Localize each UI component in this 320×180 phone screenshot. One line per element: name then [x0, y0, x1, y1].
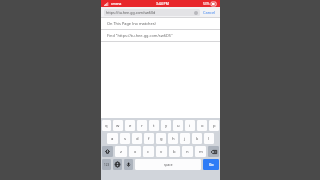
button[interactable]: l — [204, 133, 214, 144]
button[interactable]: w — [113, 120, 123, 131]
button[interactable]: s — [120, 133, 130, 144]
staticText: n — [186, 149, 189, 155]
button[interactable]: y — [161, 120, 171, 131]
staticText: s — [124, 136, 127, 142]
button[interactable]: q — [102, 120, 111, 131]
staticText: o — [201, 123, 204, 129]
staticText: t — [153, 123, 155, 129]
staticText: 53% — [203, 2, 210, 6]
staticText: b — [173, 149, 176, 155]
button[interactable]: b — [169, 146, 180, 157]
staticText: Find "https://tu.hee-gg.com/sw6DS" — [107, 33, 173, 38]
button[interactable]: f — [144, 133, 154, 144]
button[interactable]: a — [107, 133, 118, 144]
button[interactable]: c — [143, 146, 154, 157]
button[interactable]: i — [185, 120, 195, 131]
button[interactable]: j — [180, 133, 190, 144]
button[interactable]: 123 — [102, 159, 111, 170]
staticText: g — [160, 136, 163, 142]
staticText: i — [189, 123, 191, 129]
staticText: v — [160, 149, 163, 155]
button[interactable]: Cancel — [202, 9, 217, 16]
staticText: space — [164, 163, 173, 167]
button[interactable]: p — [209, 120, 219, 131]
staticText: 3:44 PM — [156, 1, 169, 6]
staticText: l — [208, 136, 210, 142]
staticText: Cancel — [203, 10, 216, 15]
staticText: m — [199, 149, 203, 155]
button[interactable]: h — [168, 133, 178, 144]
button[interactable]: m — [195, 146, 206, 157]
staticText: Go — [209, 162, 214, 167]
button[interactable]: o — [197, 120, 207, 131]
button[interactable]: Go — [203, 159, 219, 170]
button[interactable]: https://tu.hee-gg.com/sw60d — [104, 9, 200, 16]
button[interactable]: Find "https://tu.hee-gg.com/sw6DS" — [101, 30, 220, 41]
button[interactable]: k — [192, 133, 202, 144]
staticText: e — [129, 123, 132, 129]
button[interactable]: u — [173, 120, 183, 131]
staticText: u — [177, 123, 180, 129]
staticText: amena — [111, 2, 122, 6]
staticText: r — [141, 123, 143, 129]
staticText: q — [105, 123, 108, 129]
button[interactable]: t — [149, 120, 159, 131]
button[interactable]: e — [125, 120, 135, 131]
staticText: f — [148, 136, 150, 142]
staticText: w — [116, 123, 120, 129]
staticText: https://tu.hee-gg.com/sw60d — [106, 10, 156, 15]
staticText: y — [165, 123, 168, 129]
button[interactable]: g — [156, 133, 166, 144]
button[interactable]: Clear text — [194, 11, 198, 15]
staticText: z — [120, 149, 122, 155]
button[interactable]: Backspace — [208, 146, 219, 157]
staticText: j — [184, 136, 186, 142]
button[interactable]: v — [156, 146, 167, 157]
button[interactable]: n — [182, 146, 193, 157]
staticText: d — [136, 136, 139, 142]
button[interactable]: r — [137, 120, 147, 131]
button[interactable]: d — [132, 133, 142, 144]
staticText: h — [172, 136, 175, 142]
button[interactable]: Shift — [102, 146, 113, 157]
button[interactable]: x — [129, 146, 141, 157]
staticText: x — [134, 149, 137, 155]
staticText: On This Page (no matches) — [107, 21, 156, 26]
staticText: a — [111, 136, 114, 142]
staticText: k — [196, 136, 199, 142]
staticText: p — [213, 123, 216, 129]
button[interactable]: Dictation — [124, 159, 133, 170]
staticText: 123 — [104, 163, 110, 167]
button[interactable]: On This Page (no matches) — [101, 18, 220, 29]
button[interactable]: space — [135, 159, 201, 170]
staticText: c — [147, 149, 150, 155]
button[interactable]: z — [115, 146, 127, 157]
button[interactable]: Emoji — [113, 159, 122, 170]
